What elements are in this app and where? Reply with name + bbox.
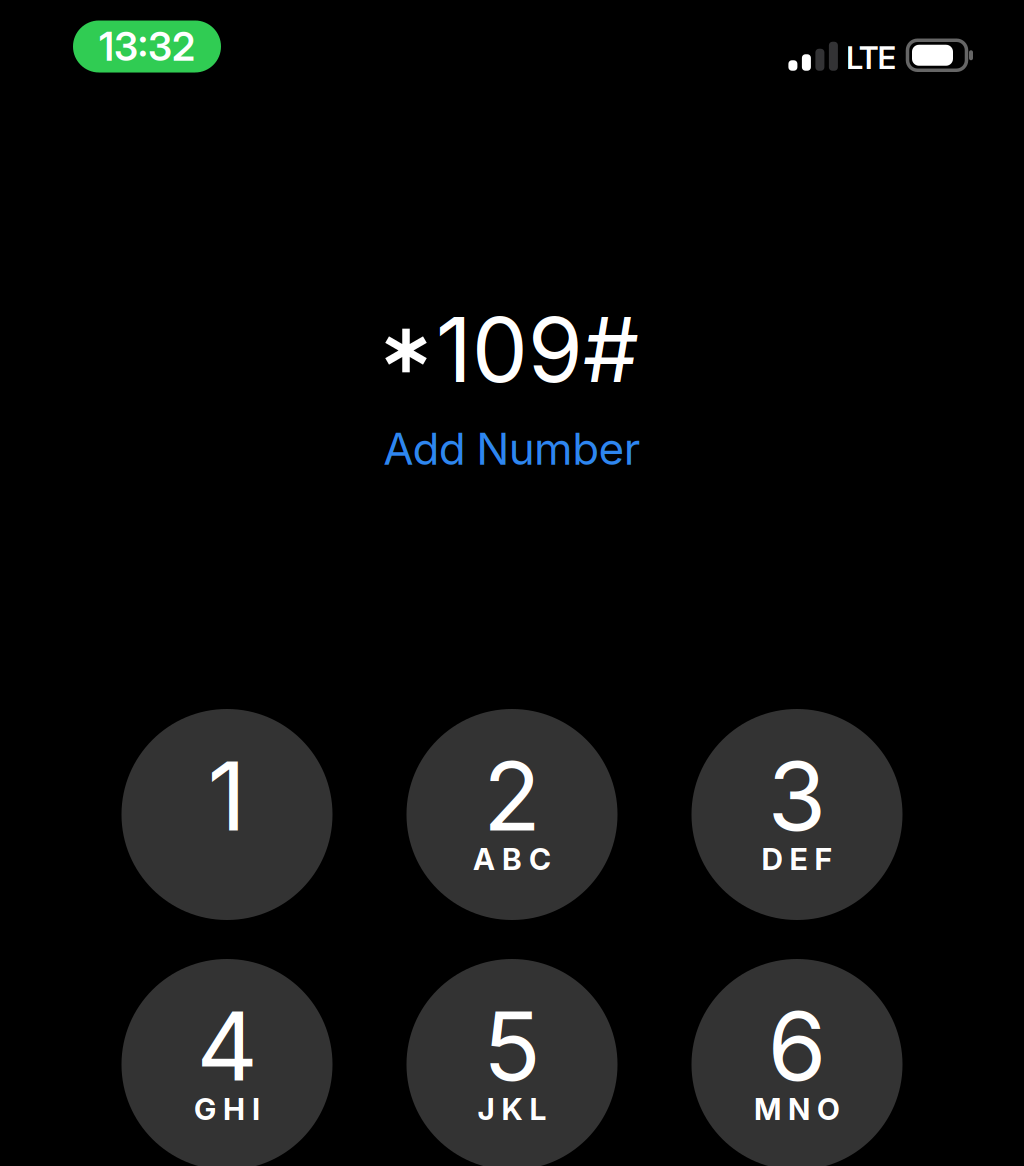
- staticText: MNO: [754, 1091, 840, 1127]
- button[interactable]: 6 MNO: [691, 959, 902, 1166]
- staticText: 4: [196, 988, 257, 1103]
- staticText: 13:32: [99, 23, 195, 70]
- button[interactable]: 5 JKL: [406, 959, 617, 1166]
- staticText: JKL: [477, 1091, 546, 1127]
- staticText: 2: [483, 738, 541, 853]
- staticText: 6: [767, 988, 826, 1103]
- staticText: 5: [483, 988, 541, 1103]
- button[interactable]: 2 ABC: [406, 709, 617, 920]
- staticText: Add Number: [383, 422, 641, 475]
- staticText: LTE: [846, 39, 896, 77]
- staticText: 109#: [436, 296, 639, 403]
- button[interactable]: 3 DEF: [691, 709, 902, 920]
- staticText: DEF: [761, 841, 832, 877]
- staticText: 1: [207, 738, 246, 853]
- staticText: 3: [767, 738, 826, 853]
- staticText: ABC: [473, 841, 551, 877]
- button[interactable]: 1: [121, 709, 332, 920]
- staticText: GHI: [194, 1091, 260, 1127]
- button[interactable]: Add Number: [375, 414, 649, 483]
- button[interactable]: 4 GHI: [121, 959, 332, 1166]
